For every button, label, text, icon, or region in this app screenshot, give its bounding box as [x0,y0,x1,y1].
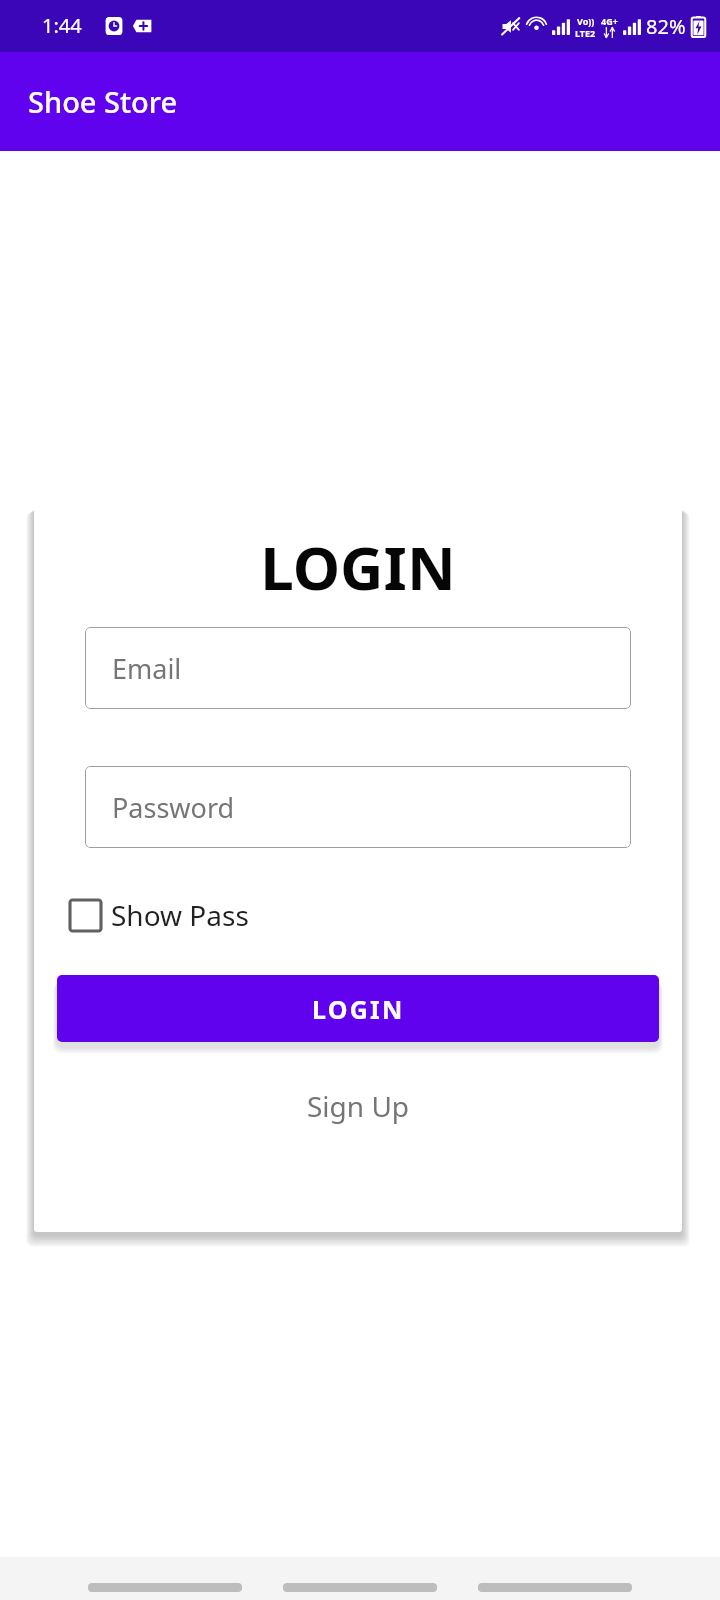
staticText: Password [112,789,235,826]
button[interactable]: Show Pass [69,892,249,938]
staticText: 1:44 [42,12,82,39]
button[interactable]: Password [85,766,631,848]
staticText: Email [112,650,182,687]
staticText: 4G+ [601,15,618,27]
staticText: LOGIN [34,526,682,608]
button[interactable]: Sign Up [34,1081,682,1131]
staticText: LTE2 [575,27,596,39]
button[interactable]: Home [283,1583,437,1592]
button[interactable]: Email [85,627,631,709]
staticText: Show Pass [111,896,249,934]
staticText: Vo)) [577,15,595,27]
button[interactable]: LOGIN [57,975,659,1042]
staticText: Sign Up [307,1087,410,1125]
staticText: LOGIN [312,992,405,1026]
button[interactable]: Back [88,1583,242,1592]
staticText: 82% [646,13,686,40]
staticText: Shoe Store [28,82,178,121]
button[interactable]: Recents [478,1583,632,1592]
